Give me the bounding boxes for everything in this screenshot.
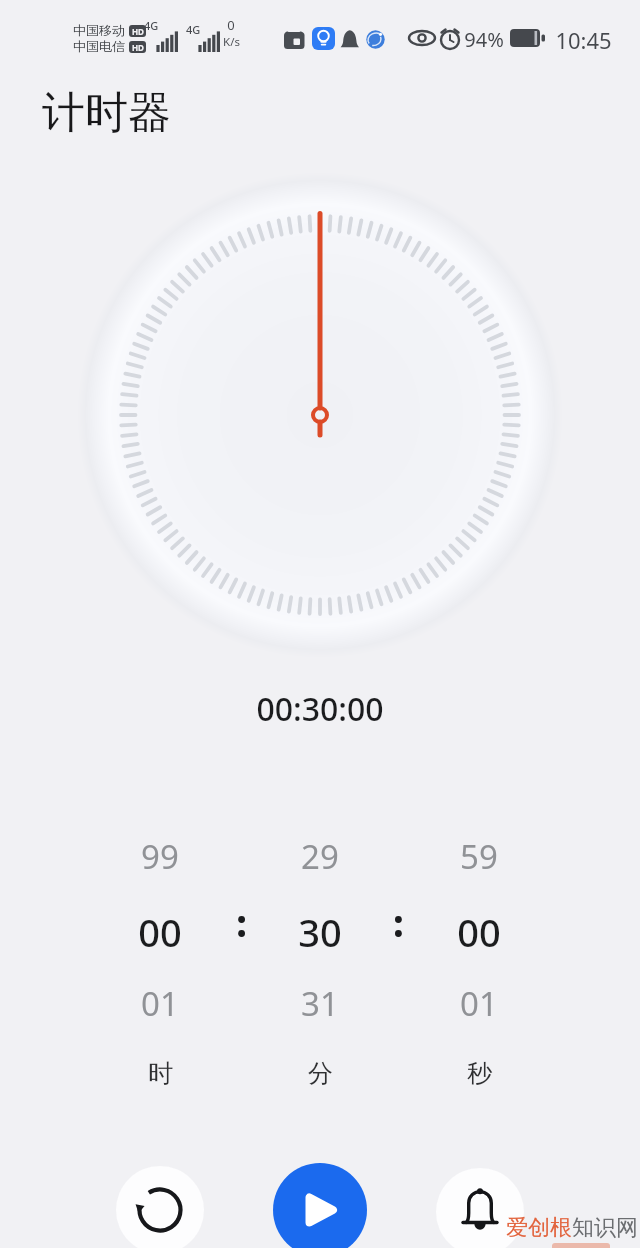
staticText: 99 [141, 834, 179, 875]
staticText: 计时器 [42, 86, 171, 140]
staticText: 时 [148, 1058, 173, 1089]
button[interactable] [436, 1168, 524, 1248]
staticText: 4G [144, 18, 159, 33]
staticText: 59 [460, 834, 498, 875]
staticText: 0 [227, 16, 235, 34]
staticText: HD [132, 42, 144, 53]
staticText: 10:45 [555, 25, 612, 51]
staticText: 01 [141, 981, 179, 1022]
button[interactable] [116, 1166, 204, 1248]
button[interactable]: 00 [414, 906, 544, 953]
staticText: 中国电信 [73, 38, 125, 54]
staticText: 4G [186, 22, 201, 37]
button[interactable]: 30 [255, 906, 385, 953]
staticText: 秒 [467, 1058, 492, 1089]
staticText: 30 [298, 906, 342, 953]
staticText: 00:30:00 [256, 687, 384, 728]
staticText: 01 [460, 981, 498, 1022]
staticText: 中国移动 [73, 22, 125, 38]
staticText: 爱创根 [506, 1214, 572, 1242]
staticText: K/s [223, 34, 240, 50]
button[interactable]: 00 [95, 906, 225, 953]
staticText: 00 [138, 906, 182, 953]
staticText: HD [132, 26, 144, 37]
staticText: 知识网 [572, 1214, 638, 1242]
button[interactable] [273, 1163, 367, 1248]
staticText: 00 [457, 906, 501, 953]
staticText: 29 [301, 834, 339, 875]
staticText: 分 [308, 1058, 333, 1089]
staticText: 94% [464, 26, 504, 50]
staticText: 31 [301, 981, 339, 1022]
